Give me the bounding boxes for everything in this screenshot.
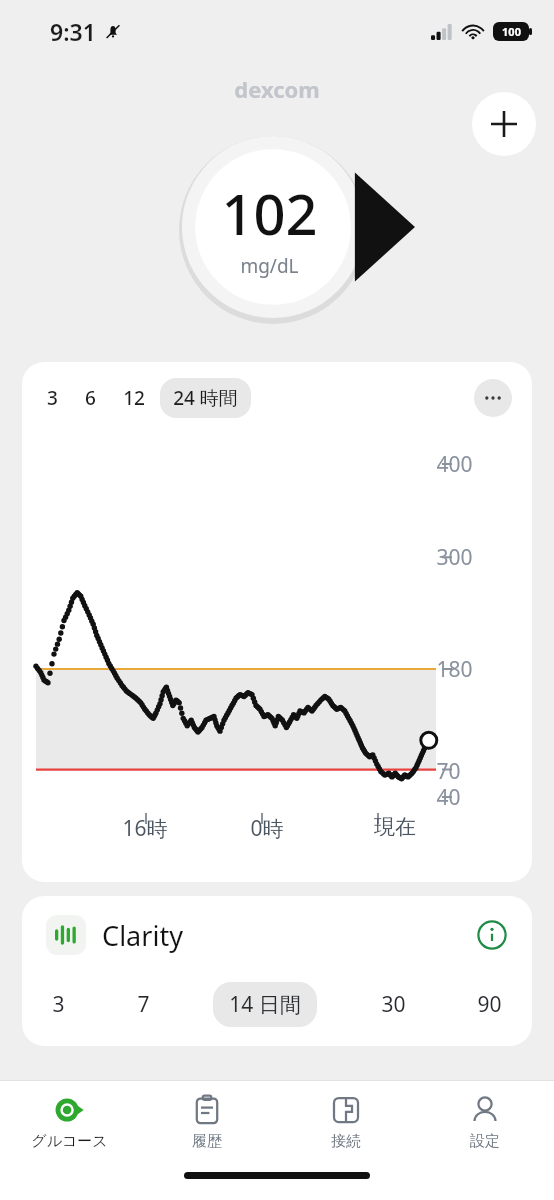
staticText: 接続 (331, 1132, 361, 1151)
staticText: 12 (123, 385, 145, 411)
staticText: 30 (381, 990, 406, 1019)
staticText: グルコース (31, 1132, 108, 1151)
staticText: 102 (221, 175, 318, 251)
button[interactable]: More options (474, 379, 512, 417)
staticText: dexcom (234, 74, 320, 104)
button[interactable]: 履歴 (138, 1081, 276, 1163)
staticText: 14 日間 (229, 990, 301, 1019)
button[interactable]: Add event (472, 92, 536, 156)
button[interactable]: 6 (80, 378, 101, 418)
button[interactable]: 設定 (415, 1081, 554, 1163)
staticText: 400 (436, 450, 473, 479)
button[interactable]: 90 (469, 982, 510, 1027)
staticText: 70 (436, 757, 461, 786)
staticText: 3 (52, 990, 65, 1019)
staticText: 設定 (470, 1132, 500, 1151)
staticText: 3 (47, 385, 58, 411)
staticText: 7 (137, 990, 150, 1019)
staticText: 180 (436, 655, 473, 684)
button[interactable]: グルコース (0, 1081, 138, 1163)
staticText: 9:31 (50, 16, 96, 47)
staticText: 履歴 (192, 1132, 222, 1151)
button[interactable]: 接続 (276, 1081, 415, 1163)
button[interactable]: 3 (44, 982, 73, 1027)
button[interactable]: 30 (373, 982, 414, 1027)
staticText: 100 (502, 24, 521, 39)
staticText: 6 (85, 385, 96, 411)
button[interactable]: Information (476, 919, 508, 951)
button[interactable]: 14 日間 (213, 982, 317, 1027)
staticText: mg/dL (240, 253, 299, 279)
staticText: 300 (436, 543, 473, 572)
button[interactable]: 24 時間 (160, 378, 251, 418)
staticText: 16時 (122, 814, 168, 843)
staticText: 24 時間 (173, 385, 238, 411)
button[interactable]: 12 (118, 378, 150, 418)
staticText: 90 (477, 990, 502, 1019)
button[interactable]: 7 (129, 982, 158, 1027)
staticText: 0時 (250, 814, 284, 843)
staticText: Clarity (102, 917, 183, 954)
button[interactable]: 3 (42, 378, 63, 418)
staticText: 40 (436, 783, 461, 812)
button[interactable]: 102 (176, 134, 406, 320)
staticText: 現在 (374, 814, 416, 840)
